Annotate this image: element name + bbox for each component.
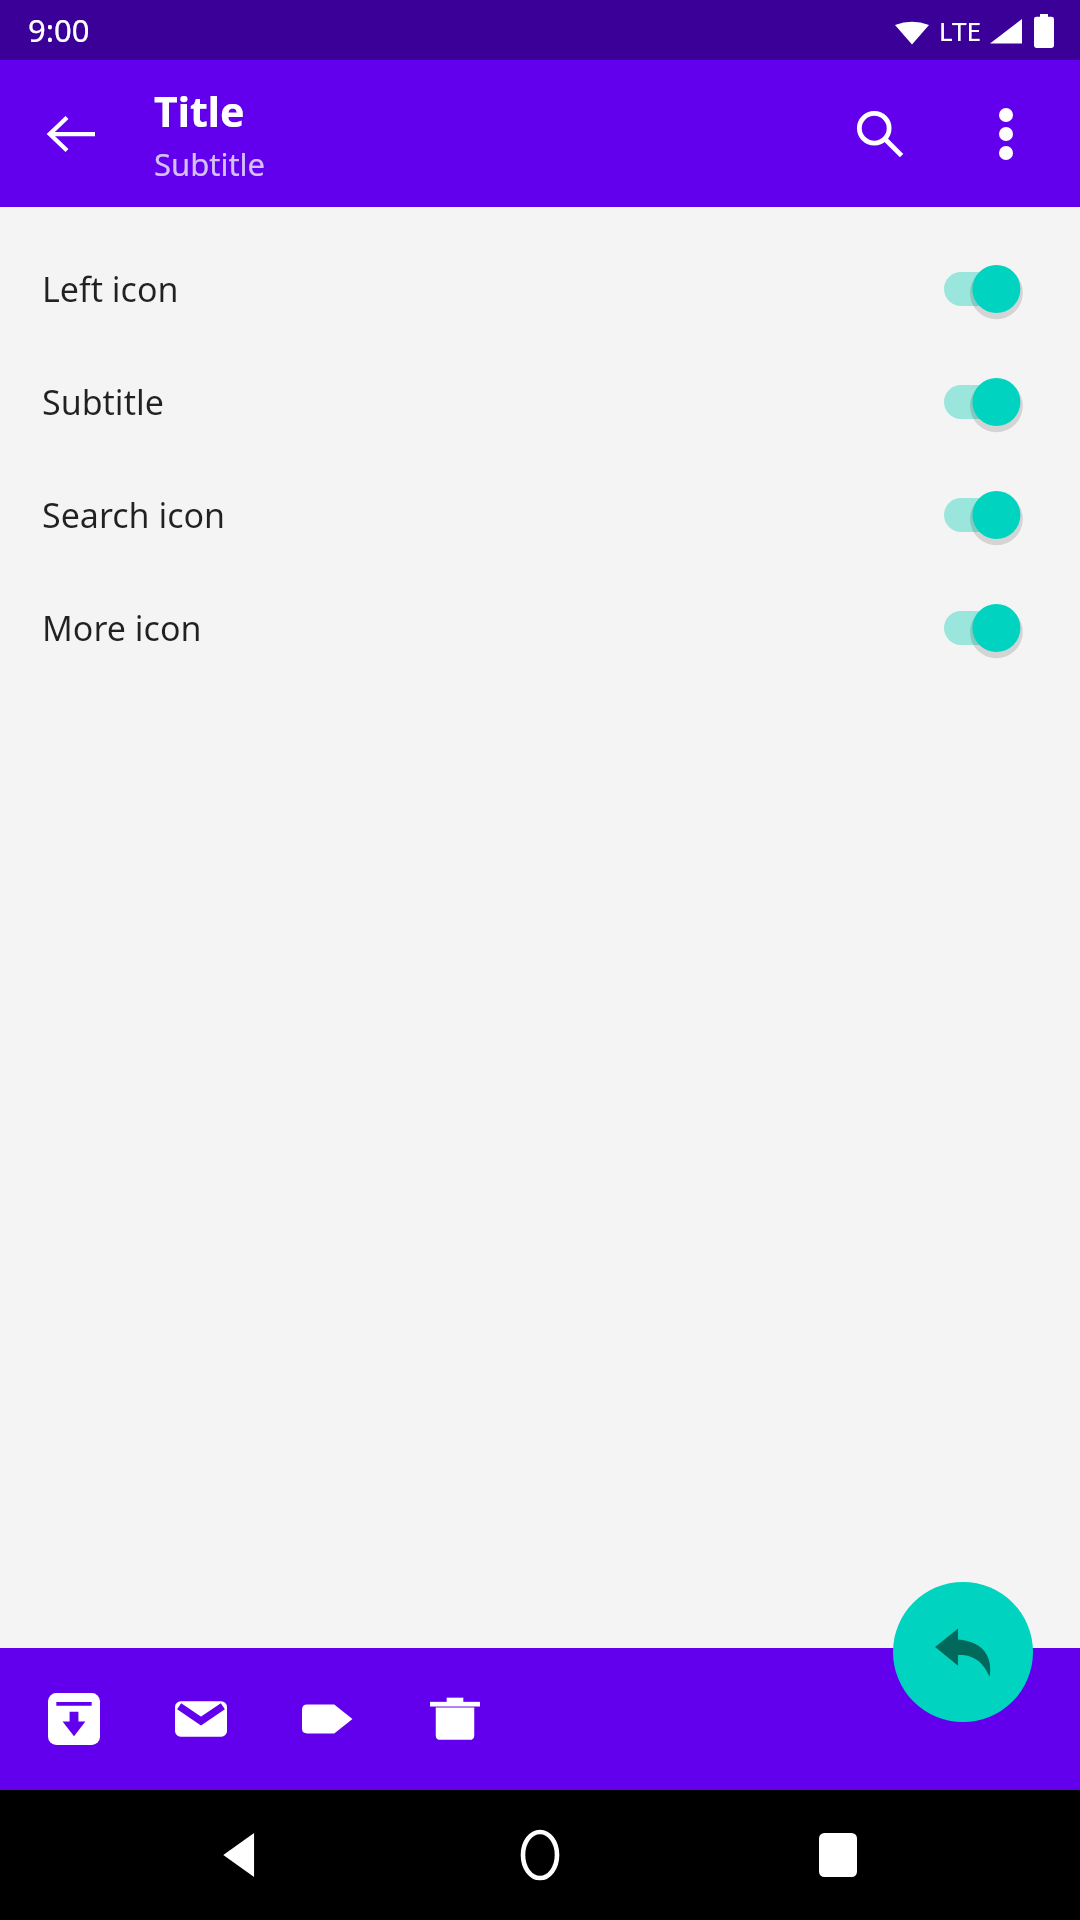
button[interactable]: Back: [24, 86, 120, 182]
staticText: Title: [154, 83, 245, 139]
staticText: Left icon: [42, 266, 944, 312]
button[interactable]: Subtitle: [0, 345, 1080, 458]
staticText: Search icon: [42, 492, 944, 538]
button[interactable]: Left icon: [0, 232, 1080, 345]
button[interactable]: More options: [958, 86, 1054, 182]
button[interactable]: Search icon: [0, 458, 1080, 571]
staticText: Subtitle: [154, 143, 266, 185]
staticText: LTE: [939, 13, 982, 48]
button[interactable]: Reply: [893, 1582, 1033, 1722]
button[interactable]: Back: [192, 1807, 288, 1903]
button[interactable]: Toggle on: [944, 488, 1022, 542]
button[interactable]: Toggle on: [944, 262, 1022, 316]
button[interactable]: Label: [280, 1671, 376, 1767]
button[interactable]: Archive: [26, 1671, 122, 1767]
staticText: Subtitle: [42, 379, 944, 425]
button[interactable]: Email: [153, 1671, 249, 1767]
button[interactable]: Delete: [407, 1671, 503, 1767]
button[interactable]: Home: [492, 1807, 588, 1903]
staticText: More icon: [42, 605, 944, 651]
button[interactable]: Recents: [790, 1807, 886, 1903]
button[interactable]: More icon: [0, 571, 1080, 684]
button[interactable]: Toggle on: [944, 601, 1022, 655]
staticText: 9:00: [28, 9, 90, 51]
button[interactable]: Search: [832, 86, 928, 182]
button[interactable]: Toggle on: [944, 375, 1022, 429]
